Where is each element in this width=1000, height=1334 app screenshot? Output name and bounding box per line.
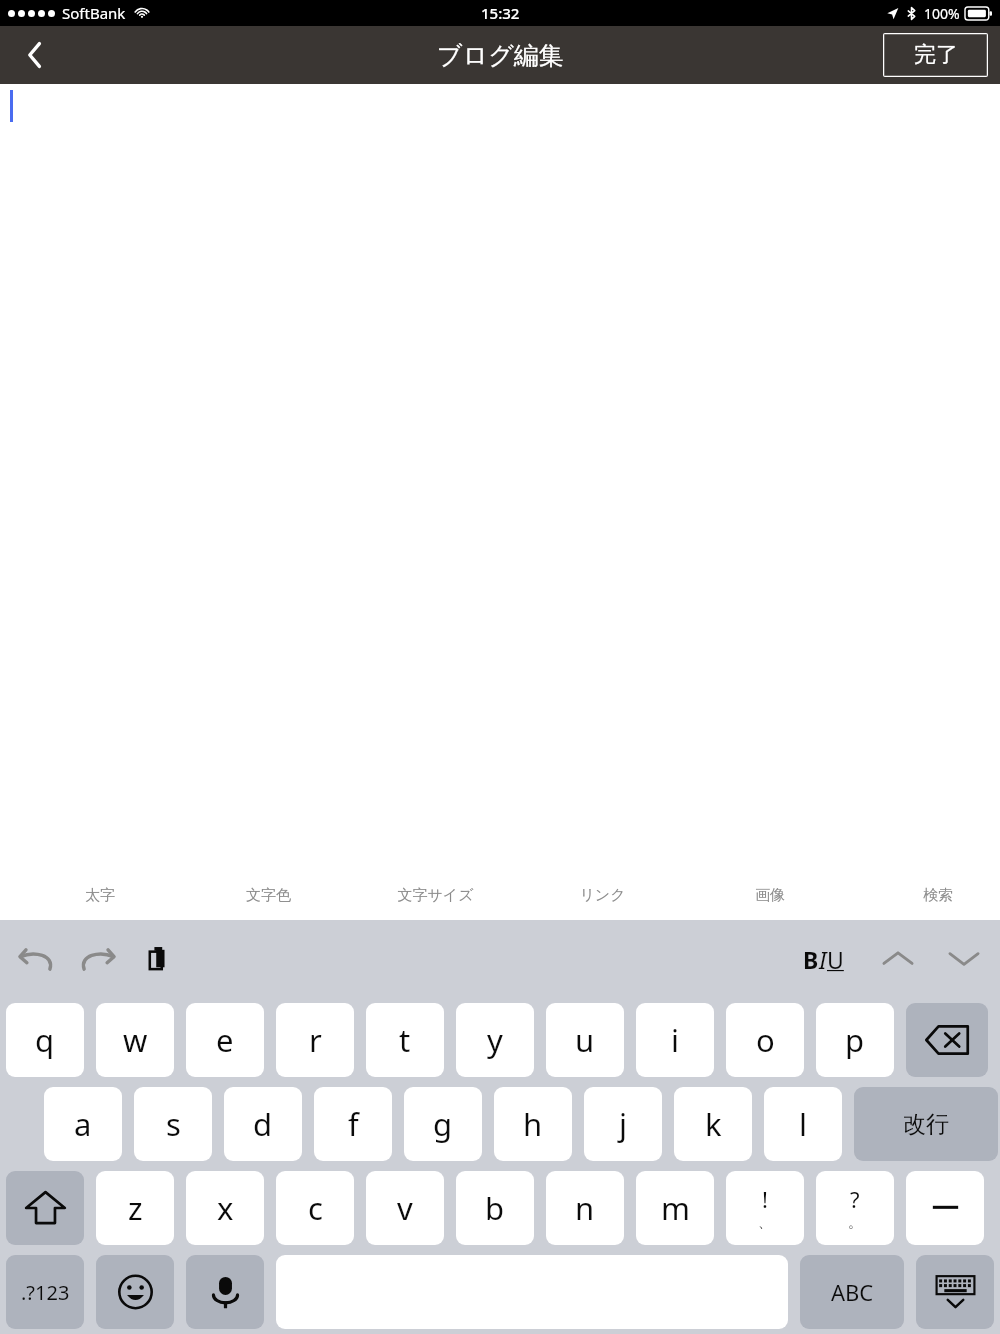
button[interactable]: m bbox=[636, 1171, 714, 1245]
button[interactable]: v bbox=[366, 1171, 444, 1245]
button[interactable]: z bbox=[96, 1171, 174, 1245]
button[interactable]: 文字色 bbox=[208, 870, 328, 920]
button[interactable]: a bbox=[44, 1087, 122, 1161]
button[interactable]: q bbox=[6, 1003, 84, 1077]
button[interactable]: 完了 bbox=[883, 33, 988, 77]
staticText: a bbox=[74, 1103, 92, 1145]
staticText: ー bbox=[930, 1189, 961, 1228]
button[interactable]: Emoji bbox=[96, 1255, 174, 1329]
button[interactable]: リンク bbox=[542, 870, 662, 920]
staticText: z bbox=[128, 1187, 143, 1229]
button[interactable]: Dictation bbox=[186, 1255, 264, 1329]
staticText: l bbox=[799, 1103, 807, 1145]
staticText: j bbox=[619, 1103, 627, 1145]
button[interactable]: l bbox=[764, 1087, 842, 1161]
staticText: 完了 bbox=[914, 41, 958, 69]
staticText: .?123 bbox=[21, 1279, 70, 1306]
button[interactable]: Shift bbox=[6, 1171, 84, 1245]
staticText: x bbox=[217, 1187, 234, 1229]
button[interactable]: e bbox=[186, 1003, 264, 1077]
staticText: c bbox=[308, 1187, 323, 1229]
staticText: ブログ編集 bbox=[437, 40, 564, 71]
button[interactable]: o bbox=[726, 1003, 804, 1077]
staticText: h bbox=[523, 1103, 543, 1145]
button[interactable]: f bbox=[314, 1087, 392, 1161]
button[interactable]: b bbox=[456, 1171, 534, 1245]
button[interactable]: u bbox=[546, 1003, 624, 1077]
staticText: 100% bbox=[924, 4, 960, 23]
button[interactable]: d bbox=[224, 1087, 302, 1161]
staticText: B bbox=[803, 944, 819, 975]
button[interactable]: 検索 bbox=[878, 870, 998, 920]
button[interactable]: 文字サイズ bbox=[375, 870, 495, 920]
staticText: 太字 bbox=[85, 886, 115, 905]
button[interactable]: j bbox=[584, 1087, 662, 1161]
staticText: 。 bbox=[848, 1214, 862, 1232]
staticText: t bbox=[399, 1019, 411, 1061]
button[interactable]: i bbox=[636, 1003, 714, 1077]
staticText: 文字サイズ bbox=[397, 886, 474, 905]
staticText: d bbox=[253, 1103, 273, 1145]
staticText: 検索 bbox=[923, 886, 953, 905]
button[interactable]: r bbox=[276, 1003, 354, 1077]
button[interactable]: Previous bbox=[876, 937, 920, 981]
staticText: q bbox=[35, 1019, 55, 1061]
button[interactable]: 太字 bbox=[40, 870, 160, 920]
staticText: 文字色 bbox=[246, 886, 291, 905]
button[interactable]: g bbox=[404, 1087, 482, 1161]
staticText: U bbox=[827, 944, 844, 975]
staticText: o bbox=[756, 1019, 775, 1061]
staticText: ? bbox=[850, 1184, 860, 1214]
staticText: i bbox=[671, 1019, 679, 1061]
staticText: I bbox=[819, 944, 827, 975]
button[interactable]: Next bbox=[942, 937, 986, 981]
staticText: SoftBank bbox=[62, 3, 126, 23]
staticText: u bbox=[575, 1019, 595, 1061]
staticText: 画像 bbox=[755, 886, 785, 905]
staticText: 改行 bbox=[903, 1110, 949, 1139]
button[interactable]: Paste bbox=[136, 936, 182, 982]
button[interactable]: ABC bbox=[800, 1255, 904, 1329]
button[interactable]: 画像 bbox=[710, 870, 830, 920]
staticText: y bbox=[487, 1019, 503, 1061]
button[interactable]: Hide keyboard bbox=[916, 1255, 994, 1329]
button[interactable]: x bbox=[186, 1171, 264, 1245]
staticText: 、 bbox=[758, 1214, 772, 1232]
staticText: p bbox=[845, 1019, 865, 1061]
staticText: s bbox=[166, 1103, 181, 1145]
staticText: f bbox=[348, 1103, 359, 1145]
staticText: r bbox=[309, 1019, 322, 1061]
staticText: m bbox=[661, 1187, 690, 1229]
button[interactable]: p bbox=[816, 1003, 894, 1077]
button[interactable]: B bbox=[799, 944, 848, 975]
button[interactable]: ー bbox=[906, 1171, 984, 1245]
button[interactable]: k bbox=[674, 1087, 752, 1161]
button[interactable]: w bbox=[96, 1003, 174, 1077]
staticText: g bbox=[433, 1103, 453, 1145]
staticText: k bbox=[705, 1103, 722, 1145]
button[interactable]: y bbox=[456, 1003, 534, 1077]
button[interactable]: Back bbox=[0, 26, 70, 84]
button[interactable]: .?123 bbox=[6, 1255, 84, 1329]
staticText: ! bbox=[762, 1184, 768, 1214]
staticText: w bbox=[123, 1019, 148, 1061]
button[interactable]: Backspace bbox=[906, 1003, 988, 1077]
staticText: n bbox=[575, 1187, 595, 1229]
staticText: e bbox=[216, 1019, 234, 1061]
staticText: b bbox=[485, 1187, 505, 1229]
button[interactable]: 改行 bbox=[854, 1087, 998, 1161]
staticText: リンク bbox=[579, 886, 626, 905]
staticText: v bbox=[397, 1187, 413, 1229]
button[interactable]: t bbox=[366, 1003, 444, 1077]
button[interactable]: ! bbox=[726, 1171, 804, 1245]
button[interactable]: Redo bbox=[74, 936, 120, 982]
staticText: ABC bbox=[831, 1277, 874, 1307]
button[interactable]: n bbox=[546, 1171, 624, 1245]
button[interactable]: c bbox=[276, 1171, 354, 1245]
button[interactable]: ? bbox=[816, 1171, 894, 1245]
staticText: 15:32 bbox=[481, 3, 520, 23]
button[interactable]: s bbox=[134, 1087, 212, 1161]
button[interactable]: h bbox=[494, 1087, 572, 1161]
button[interactable]: Undo bbox=[14, 936, 60, 982]
